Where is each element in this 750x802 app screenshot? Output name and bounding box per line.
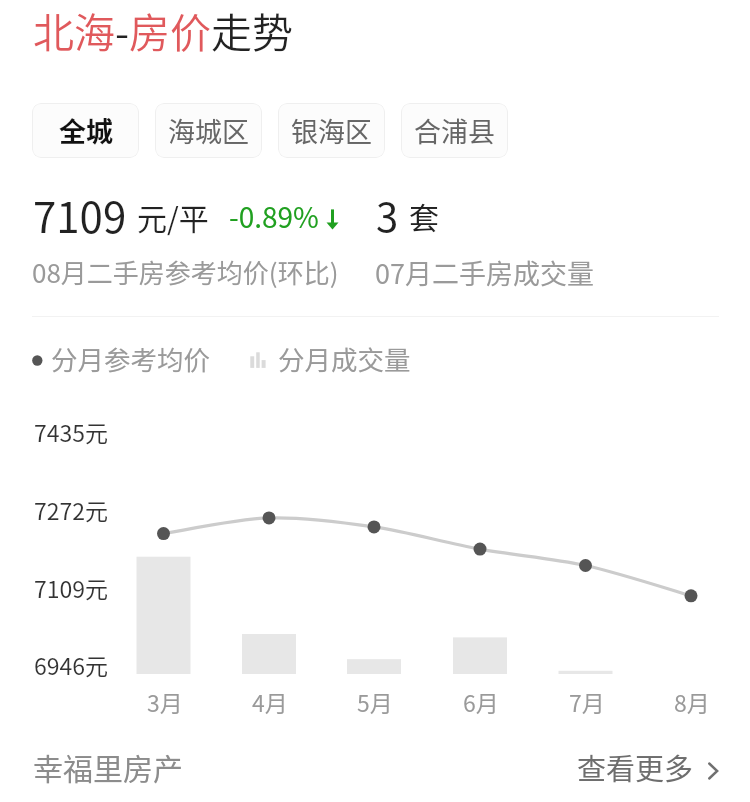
other: 下降 — [326, 208, 339, 230]
staticText: 元/平 — [137, 195, 209, 238]
staticText: 08月二手房参考均价(环比) — [32, 253, 339, 291]
staticText: 7435元 — [34, 415, 109, 448]
staticText: 北海-房价走势 — [33, 0, 294, 59]
button[interactable]: 分月成交量 — [248, 339, 413, 373]
staticText: 合浦县 — [414, 111, 495, 150]
staticText: 6月 — [463, 685, 499, 718]
staticText: 银海区 — [291, 111, 372, 150]
button[interactable]: 合浦县 — [401, 103, 508, 158]
staticText: 幸福里房产 — [33, 745, 183, 788]
staticText: 7272元 — [34, 493, 109, 526]
staticText: -0.89% — [229, 196, 319, 237]
staticText: 4月 — [252, 685, 288, 718]
staticText: 分月参考均价 — [51, 339, 210, 373]
staticText: 6946元 — [34, 648, 109, 681]
button[interactable]: 全城 — [32, 103, 139, 158]
button[interactable]: 幸福里房产 — [33, 745, 183, 788]
staticText: 全城 — [59, 111, 113, 150]
staticText: 海城区 — [168, 111, 249, 150]
staticText: 7109元 — [34, 571, 109, 604]
staticText: 5月 — [357, 685, 393, 718]
staticText: 8月 — [674, 685, 710, 718]
staticText: 套 — [409, 194, 439, 237]
button[interactable]: 银海区 — [278, 103, 385, 158]
staticText: 查看更多 — [577, 746, 694, 788]
staticText: 3月 — [147, 685, 183, 718]
button[interactable]: 分月参考均价 — [30, 339, 212, 373]
staticText: 分月成交量 — [278, 339, 411, 373]
staticText: 7109 — [33, 184, 127, 245]
button[interactable]: 查看更多 — [577, 746, 719, 788]
staticText: 7月 — [569, 685, 605, 718]
staticText: 3 — [376, 186, 399, 244]
staticText: 07月二手房成交量 — [375, 253, 594, 292]
button[interactable]: 海城区 — [155, 103, 262, 158]
